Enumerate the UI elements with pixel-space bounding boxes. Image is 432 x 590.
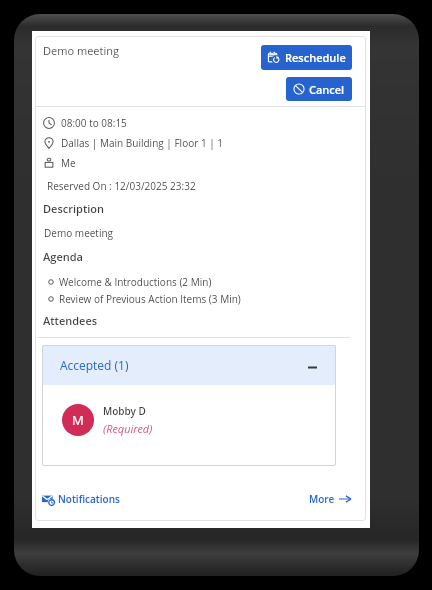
staticText: Review of Previous Action Items (3 Min) bbox=[59, 292, 241, 306]
button[interactable]: Notifications bbox=[40, 488, 122, 510]
button[interactable]: Reschedule bbox=[261, 45, 352, 70]
staticText: Notifications bbox=[58, 492, 120, 506]
staticText: Me bbox=[61, 156, 76, 170]
button[interactable]: Cancel bbox=[286, 77, 352, 101]
staticText: 08:00 to 08:15 bbox=[61, 116, 127, 130]
staticText: Mobby D bbox=[103, 404, 146, 418]
staticText: Dallas | Main Building | Floor 1 | 1 bbox=[61, 136, 224, 150]
staticText: Agenda bbox=[43, 249, 83, 264]
staticText: Cancel bbox=[309, 82, 345, 97]
staticText: Welcome & Introductions (2 Min) bbox=[59, 275, 212, 289]
staticText: Demo meeting bbox=[44, 226, 114, 240]
other: Collapse bbox=[303, 356, 321, 374]
staticText: Demo meeting bbox=[43, 43, 119, 58]
staticText: Accepted (1) bbox=[60, 357, 129, 373]
staticText: Attendees bbox=[43, 313, 98, 328]
staticText: More bbox=[309, 492, 335, 506]
staticText: Description bbox=[43, 201, 104, 216]
button[interactable]: More bbox=[307, 488, 353, 510]
button[interactable]: Accepted (1) bbox=[42, 345, 336, 385]
staticText: (Required) bbox=[103, 421, 153, 436]
staticText: Reschedule bbox=[285, 50, 346, 65]
staticText: M bbox=[72, 411, 84, 429]
staticText: Reserved On : 12/03/2025 23:32 bbox=[47, 179, 196, 193]
